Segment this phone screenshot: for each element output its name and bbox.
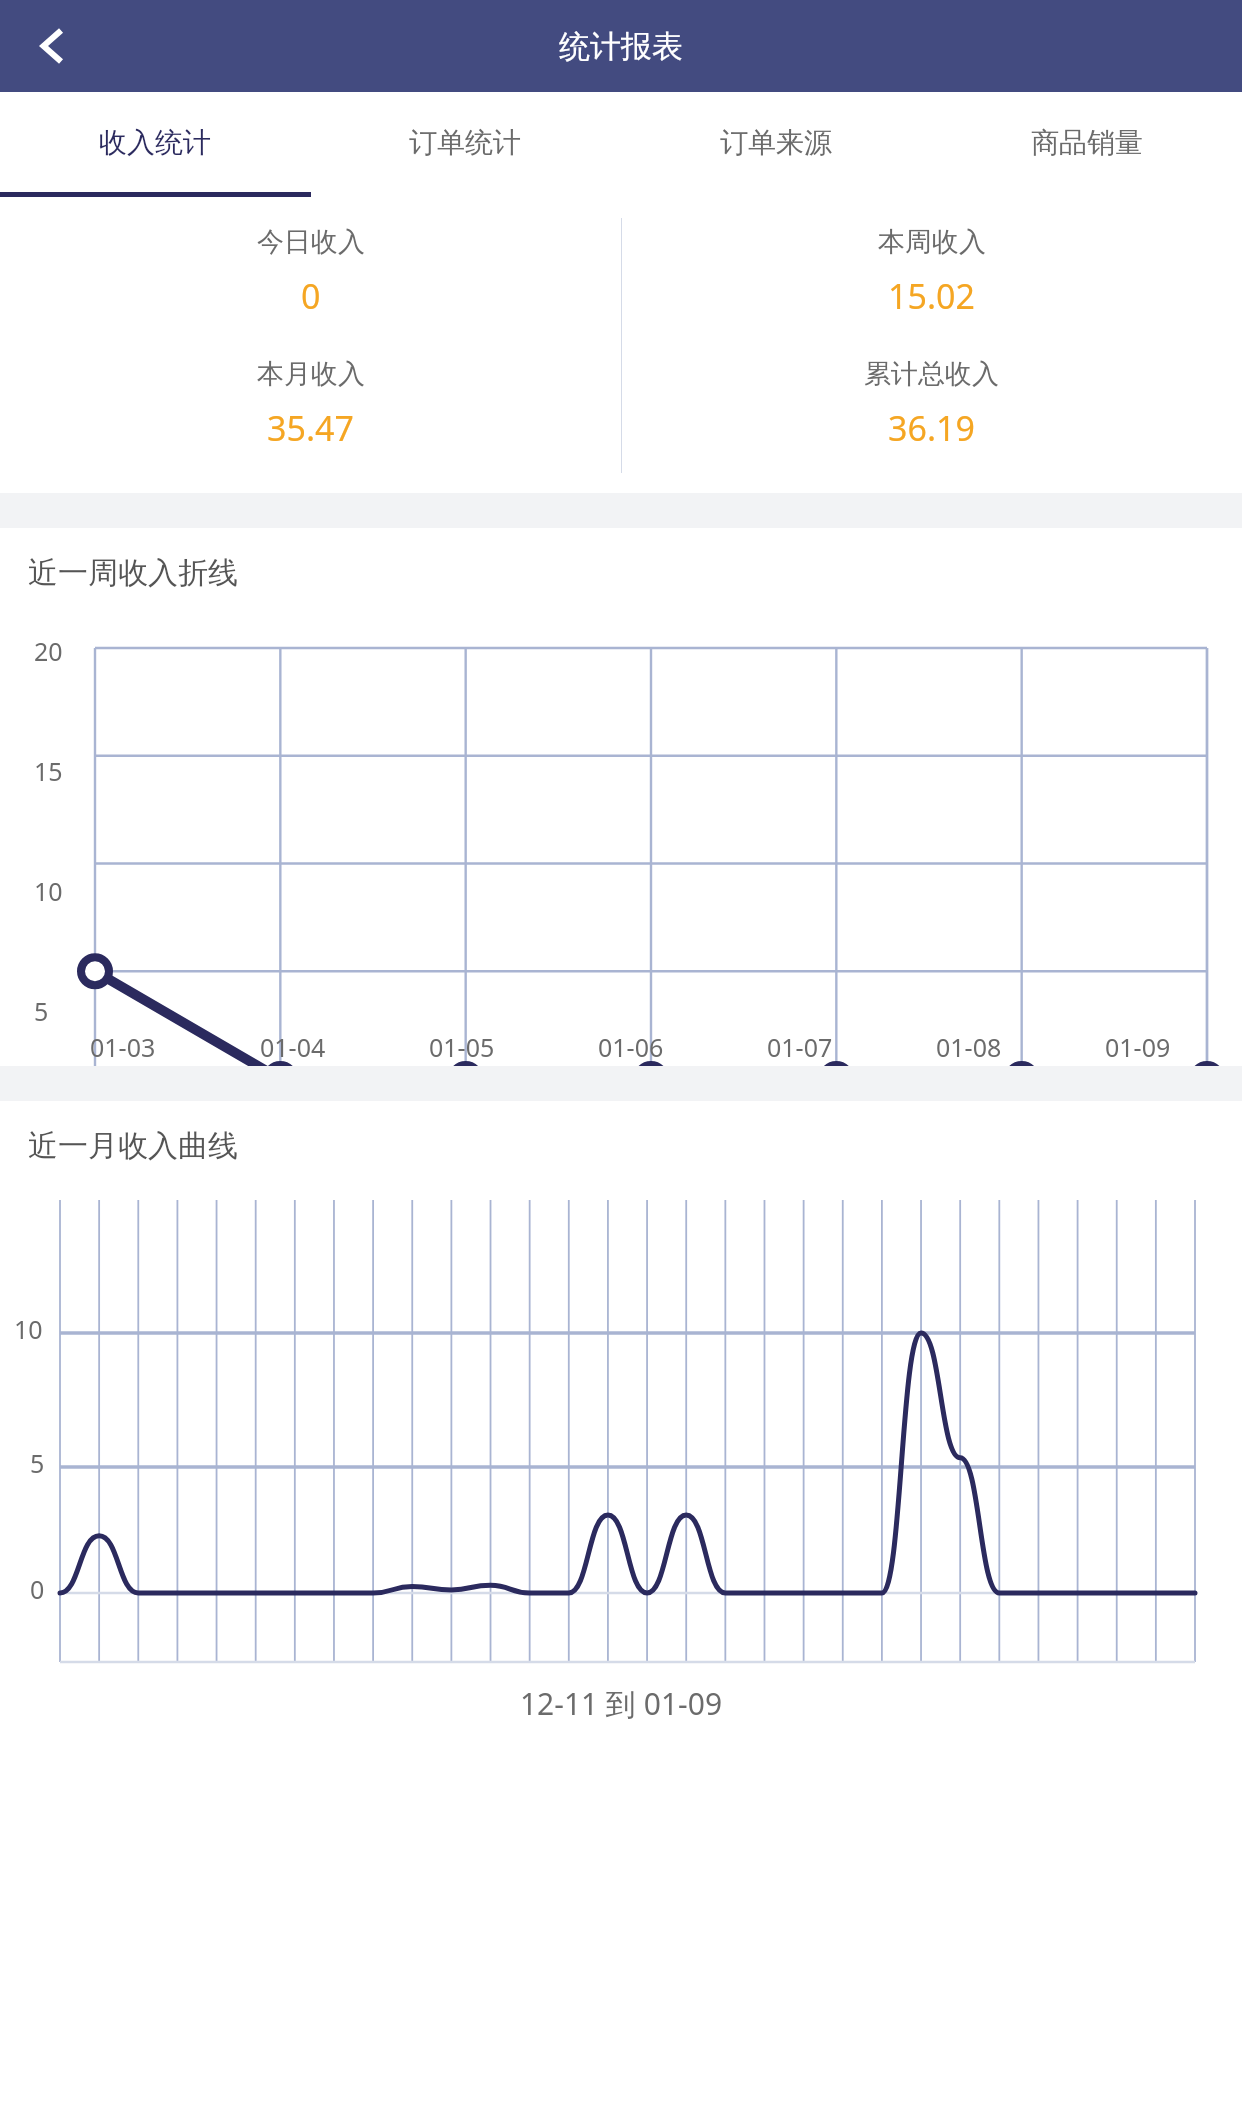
staticText: 订单来源 xyxy=(720,125,832,160)
staticText: 10 xyxy=(14,1312,43,1346)
staticText: 01-06 xyxy=(598,1030,664,1064)
staticText: 10 xyxy=(34,874,63,908)
staticText: 订单统计 xyxy=(409,125,521,160)
staticText: 5 xyxy=(34,994,49,1028)
staticText: 5 xyxy=(30,1446,45,1480)
staticText: 统计报表 xyxy=(559,27,683,66)
staticText: 12-11 到 01-09 xyxy=(0,1683,1242,1724)
staticText: 累计总收入 xyxy=(864,357,999,391)
staticText: 01-05 xyxy=(429,1030,495,1064)
button[interactable]: 收入统计 xyxy=(0,92,310,192)
staticText: 01-08 xyxy=(936,1030,1002,1064)
staticText: 本月收入 xyxy=(257,357,365,391)
staticText: 36.19 xyxy=(888,405,975,451)
button[interactable]: 订单来源 xyxy=(620,92,931,192)
staticText: 收入统计 xyxy=(99,125,211,160)
staticText: 01-03 xyxy=(90,1030,156,1064)
staticText: 20 xyxy=(34,634,63,668)
staticText: 01-04 xyxy=(260,1030,326,1064)
staticText: 0 xyxy=(30,1572,45,1606)
button[interactable]: 商品销量 xyxy=(931,92,1242,192)
button[interactable]: Back xyxy=(14,8,90,84)
button[interactable]: 订单统计 xyxy=(310,92,620,192)
staticText: 今日收入 xyxy=(257,225,365,259)
staticText: 15 xyxy=(34,754,63,788)
staticText: 01-09 xyxy=(1105,1030,1171,1064)
staticText: 0 xyxy=(301,273,321,319)
staticText: 近一月收入曲线 xyxy=(28,1127,238,1165)
staticText: 35.47 xyxy=(267,405,354,451)
staticText: 商品销量 xyxy=(1031,125,1143,160)
staticText: 15.02 xyxy=(888,273,975,319)
staticText: 近一周收入折线 xyxy=(28,554,238,592)
staticText: 01-07 xyxy=(767,1030,833,1064)
staticText: 本周收入 xyxy=(878,225,986,259)
